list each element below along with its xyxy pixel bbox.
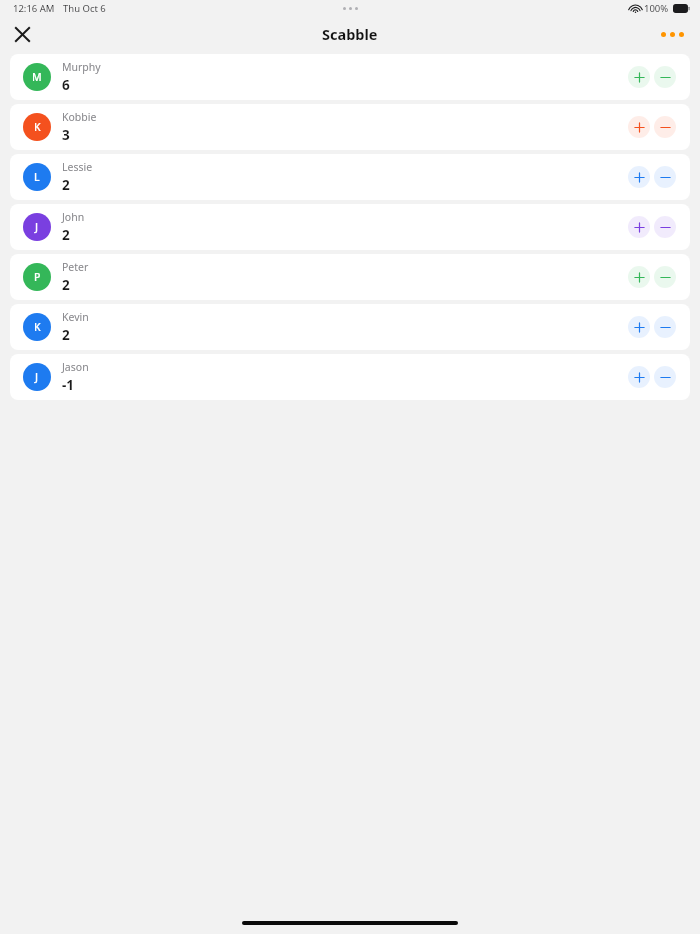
button[interactable]: Decrease score (654, 366, 676, 388)
staticText: Scabble (322, 24, 378, 44)
staticText: J (35, 370, 39, 384)
staticText: Lessie (62, 160, 93, 174)
staticText: J (35, 220, 39, 234)
button[interactable]: Increase score (628, 116, 650, 138)
staticText: M (32, 70, 42, 84)
staticText: Kobbie (62, 110, 97, 124)
staticText: 3 (62, 126, 70, 144)
staticText: 2 (62, 226, 70, 244)
staticText: Kevin (62, 310, 89, 324)
button[interactable]: Increase score (628, 366, 650, 388)
button[interactable]: Increase score (628, 266, 650, 288)
button[interactable]: Decrease score (654, 216, 676, 238)
staticText: K (34, 320, 41, 334)
button[interactable]: P (10, 254, 690, 300)
staticText: Jason (62, 360, 89, 374)
button[interactable]: Close (0, 17, 44, 51)
button[interactable]: J (10, 204, 690, 250)
staticText: 100% (644, 2, 669, 15)
button[interactable]: K (10, 304, 690, 350)
button[interactable]: M (10, 54, 690, 100)
button[interactable]: Increase score (628, 316, 650, 338)
button[interactable]: Increase score (628, 166, 650, 188)
button[interactable]: Decrease score (654, 66, 676, 88)
staticText: 2 (62, 326, 70, 344)
staticText: Peter (62, 260, 89, 274)
button[interactable]: L (10, 154, 690, 200)
staticText: Thu Oct 6 (63, 2, 106, 15)
button[interactable]: Increase score (628, 216, 650, 238)
button[interactable]: J (10, 354, 690, 400)
button[interactable]: More options (652, 17, 692, 51)
staticText: L (34, 170, 40, 184)
staticText: K (34, 120, 41, 134)
staticText: P (34, 270, 41, 284)
staticText: 6 (62, 76, 70, 94)
staticText: John (62, 210, 85, 224)
staticText: 2 (62, 176, 70, 194)
button[interactable]: K (10, 104, 690, 150)
staticText: 2 (62, 276, 70, 294)
button[interactable]: Decrease score (654, 266, 676, 288)
button[interactable]: Decrease score (654, 166, 676, 188)
staticText: -1 (62, 376, 75, 394)
staticText: Murphy (62, 60, 101, 74)
button[interactable]: Decrease score (654, 116, 676, 138)
button[interactable]: Decrease score (654, 316, 676, 338)
button[interactable]: Increase score (628, 66, 650, 88)
staticText: 12:16 AM (13, 2, 55, 15)
